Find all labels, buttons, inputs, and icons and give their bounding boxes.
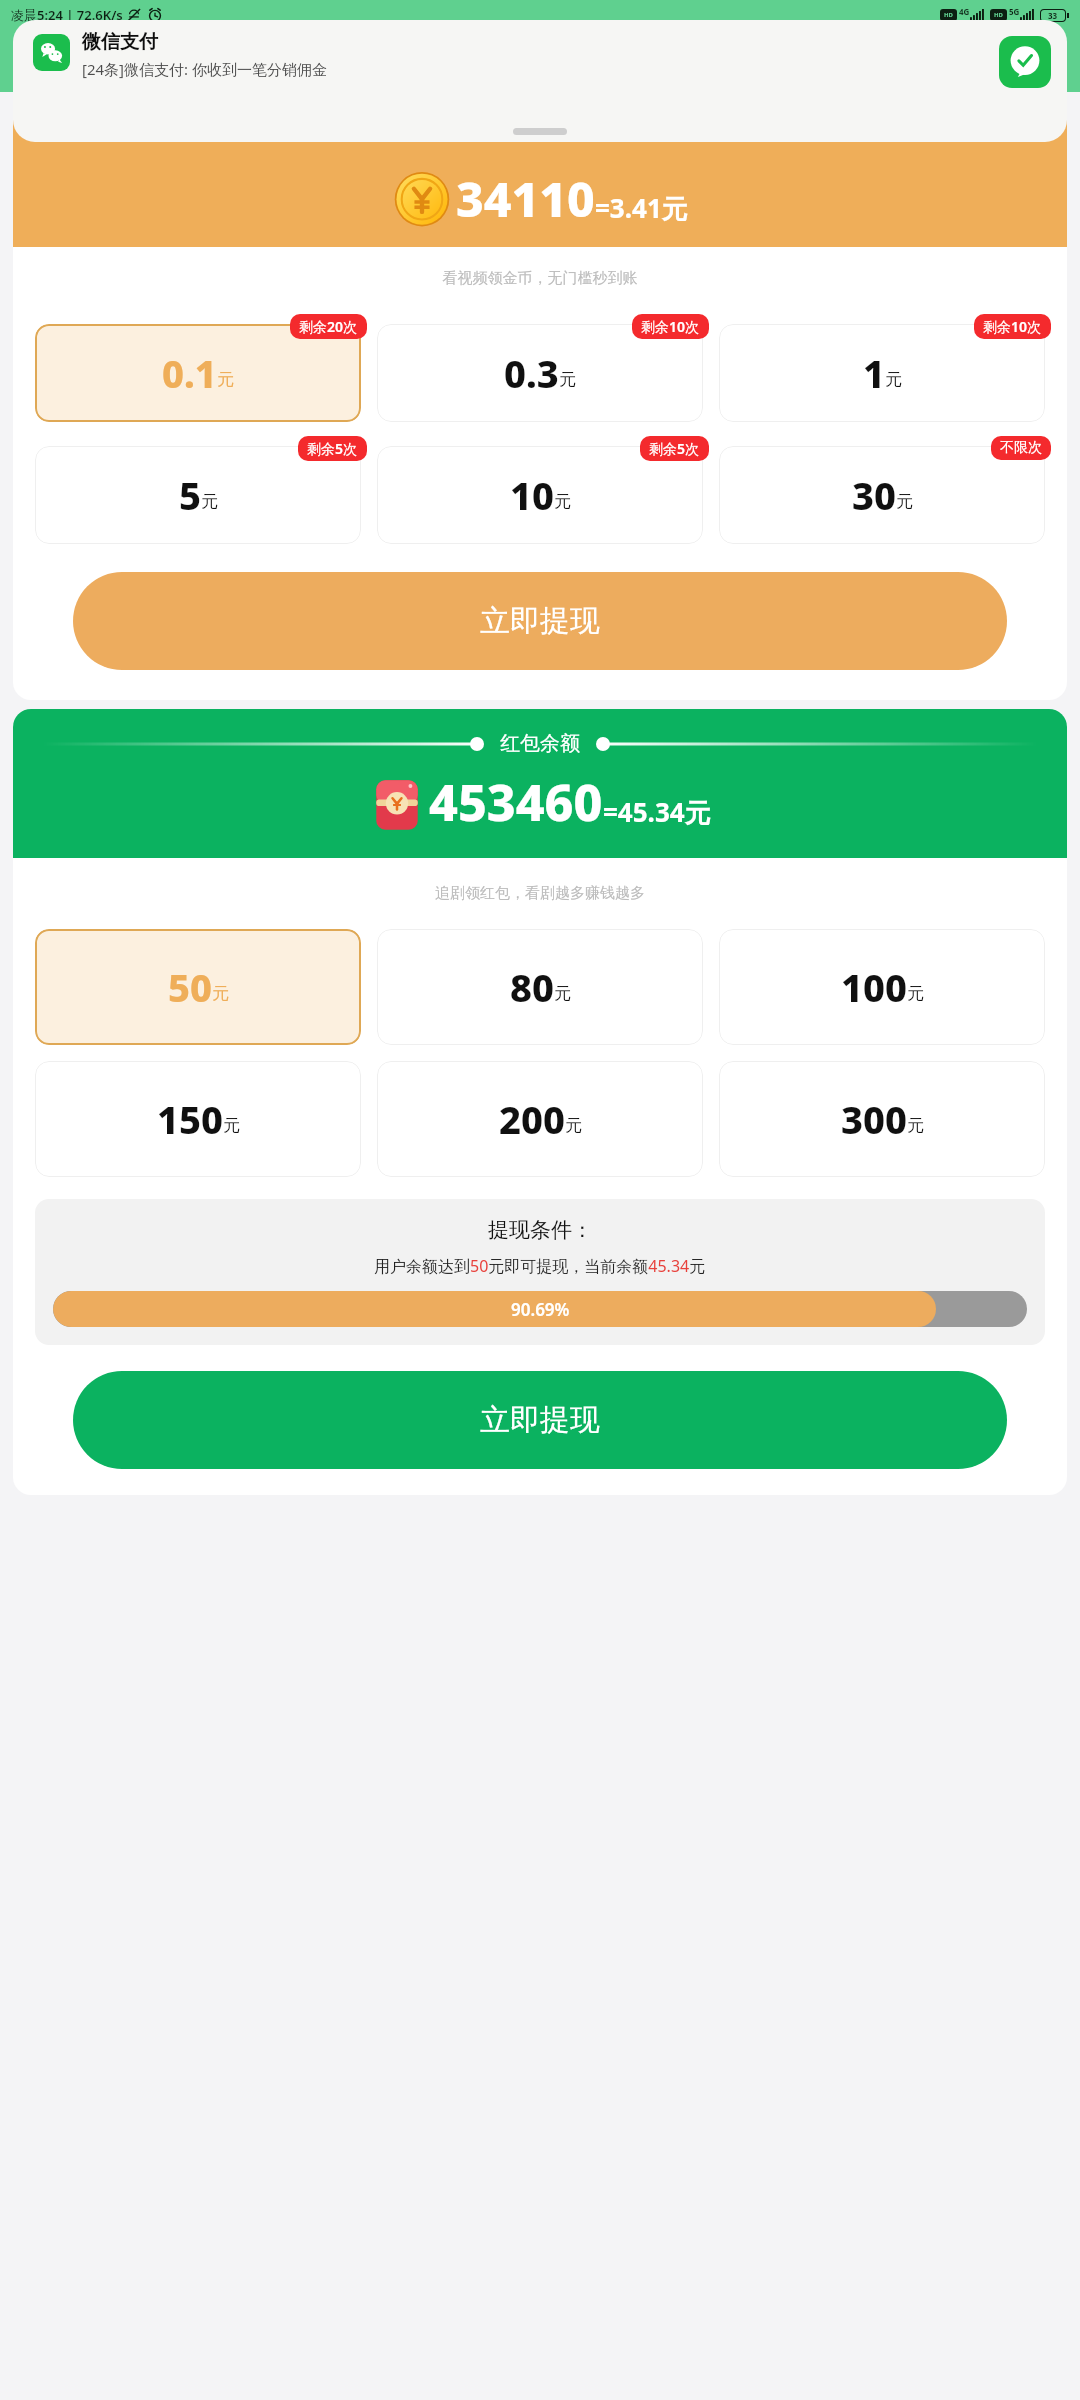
staticText: HD — [994, 11, 1003, 19]
staticText: 元 — [212, 983, 229, 1004]
button[interactable]: 兑换榜 — [1021, 53, 1068, 77]
staticText: 提现条件： — [488, 1217, 593, 1243]
staticText: 元 — [201, 491, 218, 512]
staticText: 0.1 — [162, 347, 217, 399]
staticText: 看视频领金币，无门槛秒到账 — [13, 269, 1067, 288]
button[interactable]: 10 — [377, 446, 703, 544]
button[interactable]: 微信支付 — [13, 20, 1067, 142]
staticText: 剩余20次 — [299, 317, 358, 336]
button[interactable]: Back — [12, 48, 46, 82]
button[interactable]: 30 — [719, 446, 1045, 544]
staticText: HD — [944, 11, 953, 19]
staticText: 1 — [863, 347, 885, 399]
staticText: 4G — [959, 6, 970, 17]
staticText: 立即提现 — [480, 1401, 600, 1439]
staticText: 元 — [907, 1115, 924, 1136]
button[interactable]: 立即提现 — [73, 572, 1007, 670]
staticText: 50 — [168, 961, 212, 1013]
staticText: 元 — [896, 491, 913, 512]
button[interactable]: 5 — [35, 446, 361, 544]
button[interactable]: 0.3 — [377, 324, 703, 422]
staticText: 80 — [510, 961, 554, 1013]
staticText: 凌晨5:24 | 72.6K/s — [11, 6, 123, 24]
staticText: 5 — [179, 469, 201, 521]
staticText: 5G — [1009, 6, 1020, 17]
button[interactable]: 0.1 — [35, 324, 361, 422]
staticText: 300 — [841, 1093, 907, 1145]
staticText: 150 — [157, 1093, 223, 1145]
staticText: 剩余10次 — [641, 317, 700, 336]
staticText: 200 — [499, 1093, 565, 1145]
staticText: 元 — [559, 369, 576, 390]
staticText: 剩余10次 — [983, 317, 1042, 336]
staticText: 453460 — [429, 768, 603, 836]
button[interactable]: 立即提现 — [73, 1371, 1007, 1469]
staticText: 100 — [841, 961, 907, 1013]
button[interactable]: 50 — [35, 929, 361, 1045]
button[interactable]: 80 — [377, 929, 703, 1045]
staticText: 追剧领红包，看剧越多赚钱越多 — [13, 884, 1067, 903]
button[interactable]: 200 — [377, 1061, 703, 1177]
staticText: 90.69% — [511, 1298, 570, 1321]
staticText: 微信支付 — [82, 30, 158, 54]
button[interactable]: 100 — [719, 929, 1045, 1045]
staticText: 34110 — [456, 166, 595, 231]
staticText: 用户余额达到50元即可提现，当前余额45.34元 — [374, 1255, 706, 1277]
button[interactable]: 1 — [719, 324, 1045, 422]
staticText: 不限次 — [1000, 439, 1042, 457]
staticText: =3.41元 — [595, 190, 688, 226]
staticText: 剩余5次 — [307, 439, 358, 458]
staticText: 33 — [1048, 10, 1058, 21]
staticText: 兑换榜 — [1025, 57, 1064, 73]
staticText: 元 — [554, 491, 571, 512]
staticText: 元 — [565, 1115, 582, 1136]
staticText: 10 — [510, 469, 554, 521]
staticText: 元 — [907, 983, 924, 1004]
button[interactable]: 300 — [719, 1061, 1045, 1177]
button[interactable]: 150 — [35, 1061, 361, 1177]
staticText: 红包余额 — [500, 731, 580, 756]
staticText: =45.34元 — [603, 794, 711, 830]
staticText: 元 — [554, 983, 571, 1004]
staticText: 30 — [852, 469, 896, 521]
staticText: 元 — [223, 1115, 240, 1136]
staticText: 剩余5次 — [649, 439, 700, 458]
staticText: [24条]微信支付: 你收到一笔分销佣金 — [82, 59, 327, 79]
staticText: 元 — [217, 369, 234, 390]
staticText: 0.3 — [504, 347, 559, 399]
staticText: 立即提现 — [480, 602, 600, 640]
staticText: 元 — [885, 369, 902, 390]
